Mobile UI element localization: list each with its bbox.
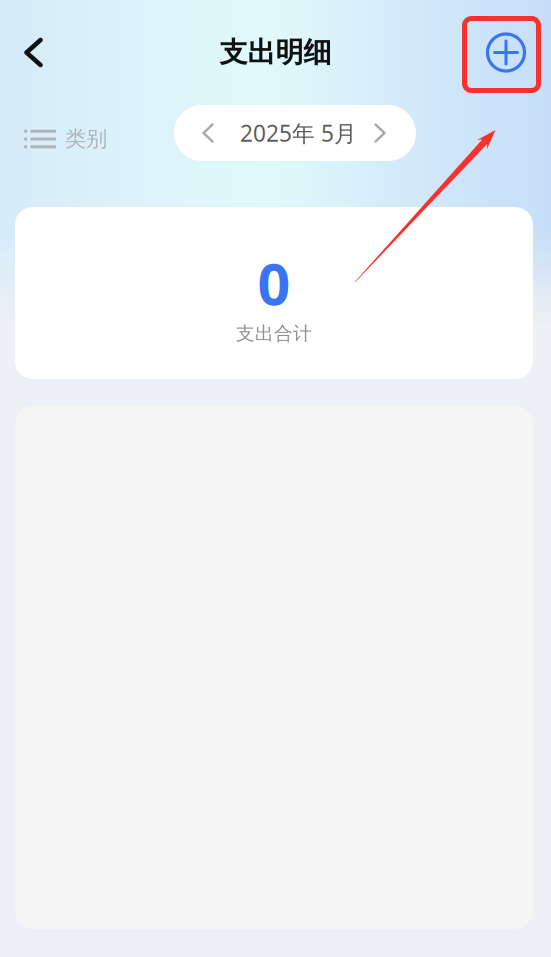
button[interactable]: Previous month [174,105,240,161]
button[interactable]: 类别 [0,111,117,155]
staticText: 类别 [65,126,107,152]
button[interactable]: Back [0,25,57,79]
staticText: 支出合计 [236,322,312,345]
staticText: 支出明细 [219,35,331,70]
staticText: 2025年 5月 [240,118,357,148]
button[interactable]: Next month [357,105,416,161]
button[interactable]: Add expense [472,22,551,82]
staticText: 0 [257,245,290,321]
